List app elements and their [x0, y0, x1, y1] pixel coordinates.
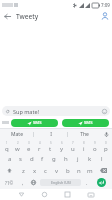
staticText: h [64, 155, 68, 163]
button[interactable]: English (US) [40, 179, 81, 186]
staticText: 1 [6, 141, 8, 145]
button[interactable]: Period [82, 177, 92, 188]
button[interactable]: 2 [12, 141, 23, 152]
staticText: The [80, 131, 89, 138]
staticText: 8 [83, 141, 85, 145]
button[interactable]: SMS [62, 119, 109, 127]
other: Attach [5, 109, 10, 114]
staticText: p [104, 145, 108, 152]
button[interactable]: d [26, 153, 37, 164]
button[interactable]: 9 [89, 141, 100, 152]
staticText: m [87, 167, 93, 175]
button[interactable]: 1 [1, 141, 12, 152]
staticText: 7:09 [101, 2, 110, 8]
staticText: f [41, 155, 44, 163]
button[interactable]: v [51, 165, 62, 176]
staticText: w [15, 145, 20, 152]
button[interactable]: Recents [56, 189, 79, 200]
staticText: a [8, 155, 12, 163]
staticText: 9 [94, 141, 96, 145]
button[interactable]: a [4, 153, 15, 164]
button[interactable]: x [29, 165, 40, 176]
staticText: 5 [50, 141, 52, 145]
button[interactable]: Attach [2, 106, 110, 116]
button[interactable]: The [68, 129, 101, 140]
staticText: q [5, 145, 9, 152]
button[interactable]: Language [28, 177, 39, 188]
staticText: d [30, 155, 34, 163]
staticText: o [93, 145, 97, 152]
staticText: x [33, 167, 37, 175]
staticText: 0 [105, 141, 107, 145]
button[interactable]: g [48, 153, 60, 164]
staticText: Mate [11, 131, 23, 138]
staticText: ?1© [5, 180, 14, 186]
staticText: SMS [84, 120, 93, 126]
button[interactable]: Back [10, 189, 33, 200]
staticText: English (US) [51, 180, 71, 185]
staticText: 3 [28, 141, 30, 145]
button[interactable]: 4 [34, 141, 45, 152]
staticText: b [66, 167, 70, 175]
button[interactable]: Home [33, 189, 56, 200]
button[interactable]: k [84, 153, 96, 164]
staticText: r [38, 145, 41, 152]
button[interactable]: Symbols [1, 177, 18, 188]
button[interactable]: h [60, 153, 72, 164]
staticText: s [19, 155, 22, 163]
staticText: SMS [33, 120, 42, 126]
staticText: j [77, 155, 79, 163]
staticText: 2 [17, 141, 19, 145]
staticText: 6 [61, 141, 63, 145]
button[interactable]: Comma [18, 177, 28, 188]
button[interactable]: Mate [0, 129, 33, 140]
staticText: v [55, 167, 59, 175]
button[interactable]: 6 [56, 141, 67, 152]
button[interactable]: SMS [11, 119, 58, 127]
staticText: , [22, 179, 24, 186]
staticText: . [86, 179, 88, 186]
button[interactable]: 7 [67, 141, 78, 152]
button[interactable]: Shift [1, 165, 18, 176]
staticText: 7 [72, 141, 74, 145]
button[interactable]: 0 [100, 141, 111, 152]
staticText: Tweety [16, 12, 39, 21]
button[interactable]: f [37, 153, 48, 164]
staticText: e [27, 145, 31, 152]
staticText: z [22, 167, 25, 175]
button[interactable]: z [18, 165, 29, 176]
staticText: Sup mate! [13, 108, 40, 115]
staticText: u [71, 145, 75, 152]
button[interactable]: I [34, 129, 67, 140]
staticText: 4 [39, 141, 41, 145]
staticText: g [52, 155, 56, 163]
button[interactable]: c [40, 165, 51, 176]
staticText: y [60, 145, 64, 152]
button[interactable]: Enter [92, 177, 111, 188]
staticText: c [44, 167, 47, 175]
button[interactable]: 3 [23, 141, 34, 152]
button[interactable]: j [72, 153, 84, 164]
button[interactable]: Hide keyboard [79, 189, 102, 200]
staticText: k [88, 155, 92, 163]
staticText: l [101, 155, 103, 163]
button[interactable]: Emoji [100, 107, 108, 115]
button[interactable]: s [15, 153, 26, 164]
button[interactable]: n [73, 165, 84, 176]
staticText: I [50, 131, 52, 138]
staticText: n [77, 167, 81, 175]
button[interactable]: 8 [78, 141, 89, 152]
staticText: t [49, 145, 52, 152]
button[interactable]: l [96, 153, 108, 164]
button[interactable]: Contact details [98, 9, 112, 23]
staticText: i [83, 145, 85, 152]
button[interactable]: Voice input [101, 129, 112, 140]
button[interactable]: m [84, 165, 95, 176]
button[interactable]: Delete [95, 165, 111, 176]
button[interactable]: b [62, 165, 73, 176]
button[interactable]: Back [0, 9, 14, 23]
button[interactable]: 5 [45, 141, 56, 152]
